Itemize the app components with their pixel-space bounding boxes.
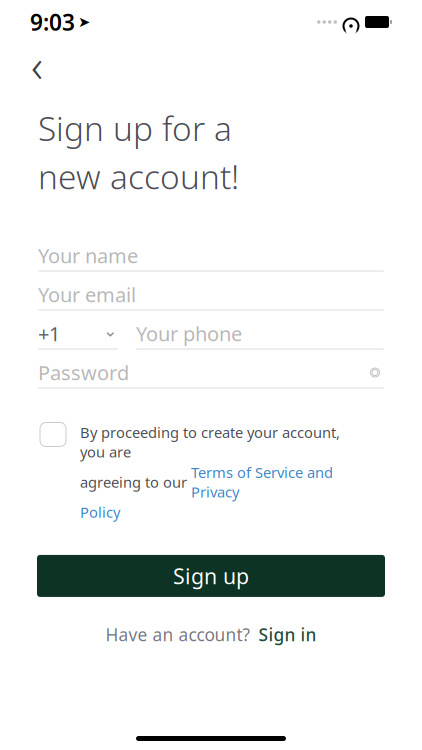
button[interactable]: Agree to terms (40, 422, 66, 446)
button[interactable]: Terms of Service and Privacy (191, 462, 333, 501)
staticText: +1 (38, 320, 60, 347)
staticText: Password (38, 359, 129, 386)
staticText: Have an account? (105, 623, 250, 646)
staticText: ➤ (78, 14, 90, 30)
staticText: By proceeding to create your account, yo… (80, 422, 340, 461)
button[interactable]: Sign up (37, 555, 385, 597)
staticText: Your name (38, 242, 138, 269)
button[interactable]: Your phone (136, 318, 384, 349)
button[interactable]: Your name (0, 240, 422, 271)
button[interactable]: Back (18, 46, 56, 84)
staticText: Policy (80, 502, 120, 522)
button[interactable]: Your email (0, 279, 422, 310)
staticText: Sign in (258, 623, 316, 646)
staticText: agreeing to our (80, 472, 191, 492)
staticText: Sign up for a (38, 106, 232, 150)
staticText: Your phone (136, 320, 242, 347)
staticText: Sign up (173, 562, 249, 590)
button[interactable]: Have an account? (105, 623, 316, 646)
staticText: Terms of Service and Privacy (191, 462, 333, 501)
staticText: 9:03 (30, 7, 75, 37)
button[interactable]: Country code (38, 318, 118, 349)
staticText: ⌄ (103, 321, 118, 340)
staticText: ‹ (31, 35, 43, 95)
staticText: new account! (38, 154, 239, 199)
staticText: Your email (38, 281, 136, 308)
button[interactable]: Policy (80, 502, 120, 522)
button[interactable]: Password (0, 357, 422, 388)
